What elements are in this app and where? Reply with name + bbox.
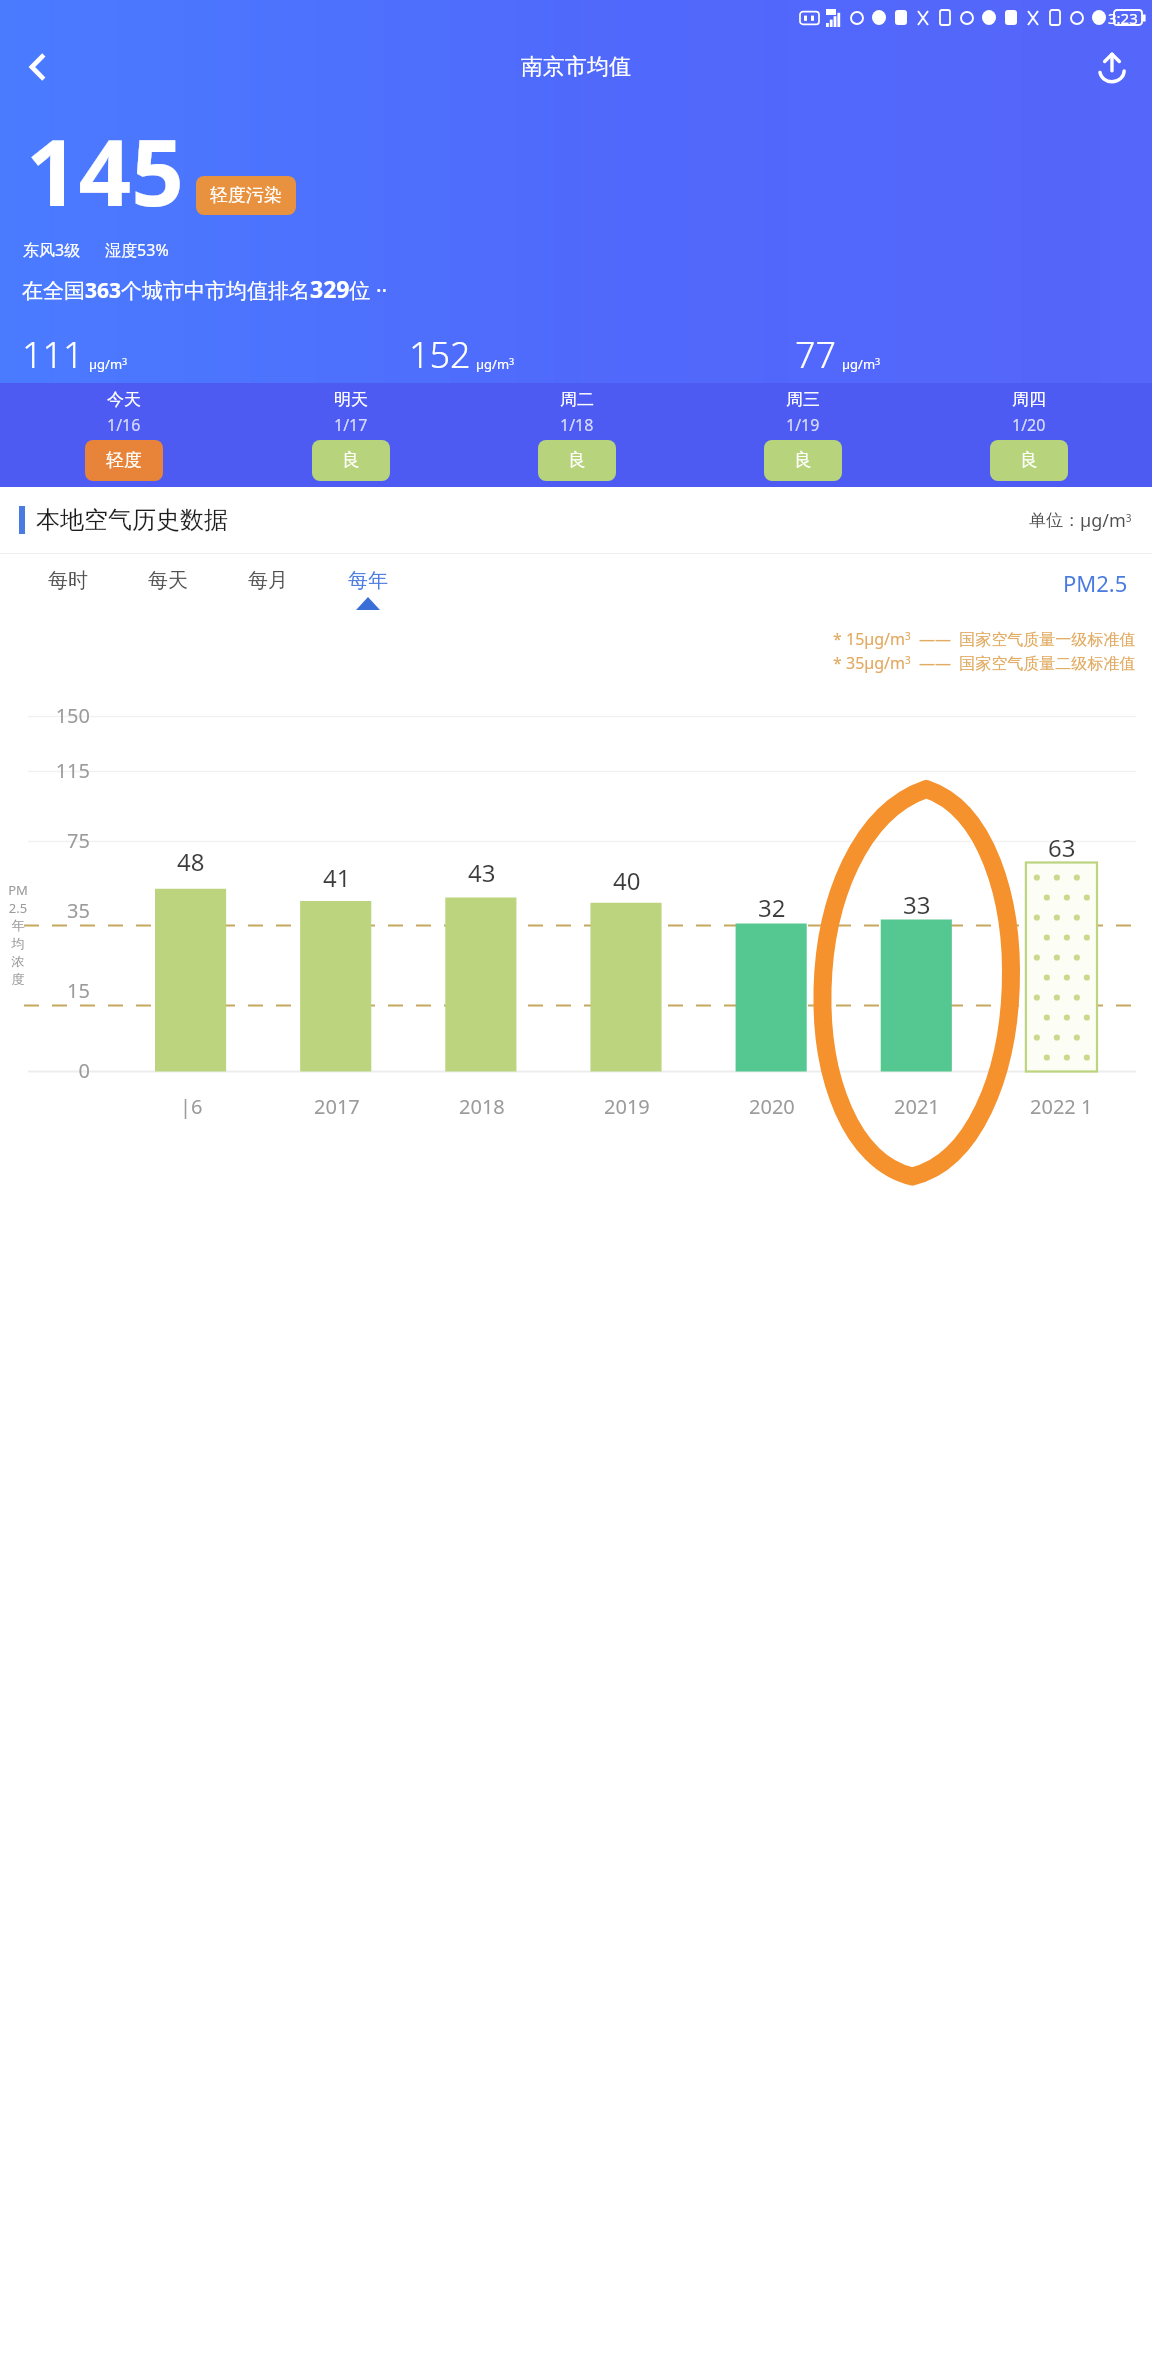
staticText: 单位： — [1029, 510, 1080, 531]
button[interactable]: Back — [10, 40, 64, 94]
button[interactable]: 每月 — [218, 568, 318, 593]
button[interactable]: 77 — [795, 330, 1144, 383]
staticText: 15 — [36, 977, 90, 1004]
staticText: 2020 — [749, 1093, 795, 1120]
staticText: 良 — [794, 449, 812, 472]
staticText: 33 — [903, 888, 931, 921]
staticText: µg/m3 — [842, 355, 881, 373]
staticText: µg/m3 — [89, 355, 128, 373]
staticText: 2021 — [894, 1093, 940, 1120]
staticText: 南京市均值 — [521, 53, 631, 81]
button[interactable]: 周二 — [464, 389, 690, 481]
staticText: 145 — [26, 108, 184, 233]
staticText: 东风3级 湿度53% — [23, 239, 169, 261]
button[interactable]: Share — [1084, 39, 1140, 95]
staticText: 48 — [177, 845, 205, 878]
staticText: 每年 — [348, 568, 388, 593]
button[interactable]: 每时 — [18, 568, 118, 593]
staticText: 周二 — [560, 389, 594, 410]
staticText: 每月 — [248, 568, 288, 593]
staticText: 63 — [1048, 831, 1076, 864]
staticText: 良 — [1020, 449, 1038, 472]
staticText: 43 — [468, 856, 496, 889]
staticText: 每天 — [148, 568, 188, 593]
staticText: 1/16 — [107, 414, 141, 436]
staticText: 152 — [409, 330, 471, 379]
staticText: 111 — [22, 330, 84, 379]
staticText: 今天 — [107, 389, 141, 410]
staticText: 35 — [36, 897, 90, 924]
staticText: 2017 — [314, 1093, 360, 1120]
staticText: 115 — [36, 757, 90, 784]
staticText: µg/m3 — [476, 355, 515, 373]
staticText: 良 — [342, 449, 360, 472]
staticText: 2022 1 — [1030, 1093, 1093, 1120]
staticText: 32 — [758, 891, 786, 924]
staticText: 1/18 — [560, 414, 594, 436]
button[interactable]: 轻度污染 — [196, 176, 296, 215]
staticText: 本地空气历史数据 — [36, 505, 228, 535]
staticText: 轻度 — [106, 449, 142, 472]
staticText: 1/19 — [786, 414, 820, 436]
staticText: 3:23 — [1108, 8, 1138, 28]
staticText: 周四 — [1012, 389, 1046, 410]
staticText: 0 — [36, 1057, 90, 1084]
button[interactable]: 周三 — [690, 389, 916, 481]
button[interactable]: 152 — [409, 330, 795, 383]
staticText: 75 — [36, 827, 90, 854]
button[interactable]: 周四 — [916, 389, 1142, 481]
staticText: 41 — [323, 861, 351, 894]
staticText: 1/17 — [334, 414, 368, 436]
staticText: 明天 — [334, 389, 368, 410]
button[interactable]: 今天 — [10, 389, 237, 481]
staticText: 40 — [613, 864, 641, 897]
button[interactable]: 每年 — [318, 568, 418, 610]
button[interactable]: 明天 — [237, 389, 464, 481]
staticText: 150 — [36, 702, 90, 729]
staticText: * 35µg/m3 —— 国家空气质量二级标准值 — [833, 652, 1136, 674]
staticText: 1/20 — [1012, 414, 1046, 436]
staticText: 2019 — [604, 1093, 650, 1120]
staticText: 2018 — [459, 1093, 505, 1120]
staticText: 每时 — [48, 568, 88, 593]
staticText: 轻度污染 — [210, 184, 282, 207]
staticText: µg/m3 — [1080, 508, 1132, 533]
button[interactable]: 每天 — [118, 568, 218, 593]
staticText: * 15µg/m3 —— 国家空气质量一级标准值 — [833, 628, 1136, 650]
staticText: 77 — [795, 330, 837, 379]
button[interactable]: PM2.5 — [1063, 568, 1128, 598]
staticText: 良 — [568, 449, 586, 472]
button[interactable]: 111 — [22, 330, 409, 383]
staticText: PM2.5年均浓度 — [6, 881, 30, 988]
button[interactable]: 在全国363个城市中市均值排名329位 ·· — [22, 273, 388, 304]
staticText: 周三 — [786, 389, 820, 410]
staticText: |6 — [180, 1093, 203, 1120]
